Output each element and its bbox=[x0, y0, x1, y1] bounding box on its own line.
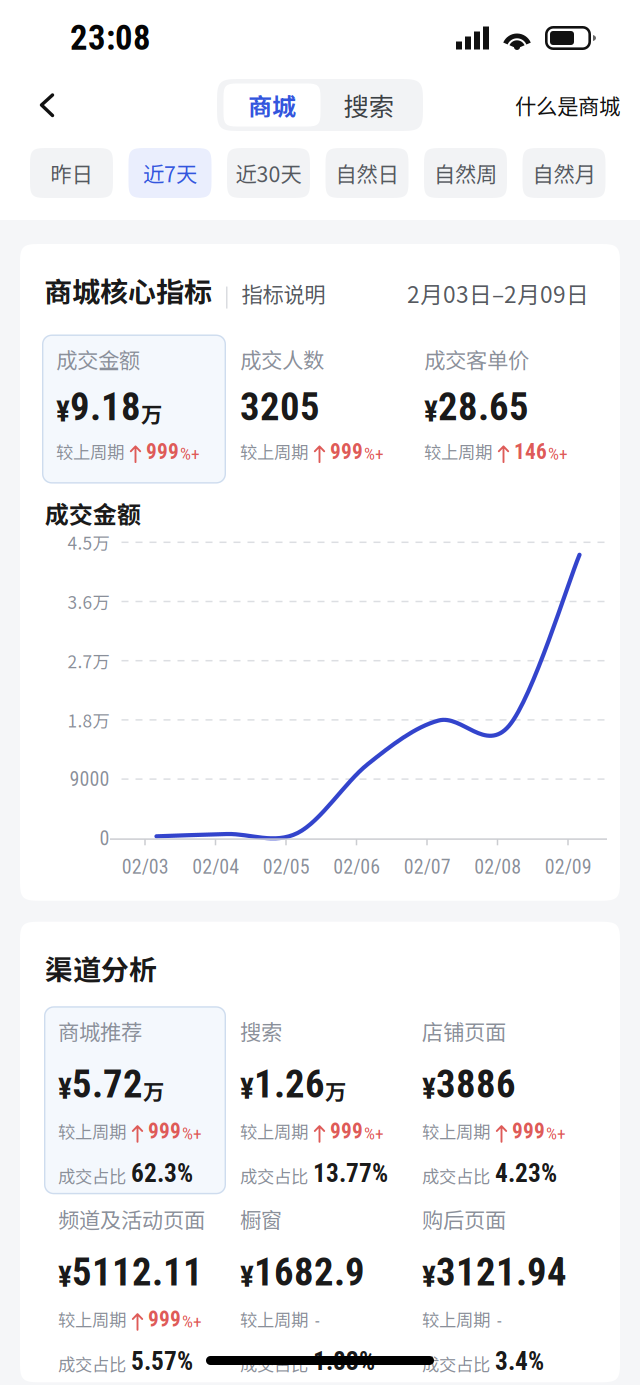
staticText: 频道及活动页面 bbox=[58, 1203, 205, 1234]
button[interactable]: 成交人数 bbox=[226, 334, 410, 483]
staticText: ¥ bbox=[424, 394, 438, 429]
button[interactable]: 指标说明 bbox=[241, 278, 325, 311]
button[interactable]: 自然日 bbox=[325, 148, 408, 198]
staticText: 3.4% bbox=[495, 1346, 544, 1376]
staticText: % bbox=[180, 444, 191, 464]
staticText: 5.57% bbox=[131, 1346, 193, 1376]
staticText: 搜索 bbox=[240, 1015, 282, 1046]
button[interactable]: 自然月 bbox=[522, 148, 605, 198]
staticText: - bbox=[311, 1310, 320, 1332]
staticText: 较上周期 bbox=[58, 1119, 126, 1144]
staticText: 近30天 bbox=[235, 158, 301, 188]
button[interactable]: 频道及活动页面 bbox=[44, 1194, 226, 1382]
staticText: + bbox=[193, 1123, 202, 1144]
staticText: + bbox=[375, 444, 384, 464]
staticText: 较上周期 bbox=[58, 1307, 126, 1332]
staticText: 02/06 bbox=[333, 855, 380, 879]
staticText: 02/07 bbox=[404, 855, 451, 879]
staticText: + bbox=[193, 1311, 202, 1332]
staticText: ¥ bbox=[422, 1259, 436, 1294]
button[interactable]: 店铺页面 bbox=[408, 1006, 590, 1194]
staticText: 23:08 bbox=[70, 18, 151, 58]
staticText: 万 bbox=[141, 398, 162, 429]
staticText: % bbox=[364, 444, 375, 464]
button[interactable]: Back bbox=[27, 77, 67, 133]
staticText: 4.5万 bbox=[67, 530, 109, 555]
staticText: 近7天 bbox=[143, 158, 197, 188]
staticText: 1.26 bbox=[254, 1061, 325, 1107]
staticText: 自然月 bbox=[532, 158, 595, 188]
staticText: 02/09 bbox=[545, 855, 592, 879]
staticText: 成交金额 bbox=[56, 343, 140, 374]
button[interactable]: 商城推荐 bbox=[44, 1006, 226, 1194]
staticText: 1.8万 bbox=[67, 707, 109, 732]
staticText: + bbox=[557, 1123, 566, 1144]
staticText: 3205 bbox=[240, 384, 320, 430]
staticText: 万 bbox=[325, 1075, 346, 1106]
staticText: 999 bbox=[148, 1307, 181, 1332]
staticText: 2月03日–2月09日 bbox=[407, 277, 589, 309]
staticText: 自然日 bbox=[335, 158, 398, 188]
button[interactable]: 自然周 bbox=[424, 148, 507, 198]
staticText: 999 bbox=[146, 439, 179, 464]
staticText: 商城 bbox=[248, 88, 296, 122]
staticText: % bbox=[364, 1123, 375, 1144]
staticText: 较上周期 bbox=[424, 439, 492, 464]
button[interactable]: 成交金额 bbox=[42, 334, 226, 483]
staticText: 万 bbox=[143, 1075, 164, 1106]
staticText: 999 bbox=[512, 1119, 545, 1144]
button[interactable]: 成交客单价 bbox=[410, 334, 594, 483]
staticText: 成交占比 bbox=[240, 1163, 308, 1188]
staticText: 自然周 bbox=[434, 158, 497, 188]
staticText: 999 bbox=[330, 1119, 363, 1144]
staticText: + bbox=[375, 1123, 384, 1144]
staticText: 橱窗 bbox=[240, 1203, 282, 1234]
staticText: 较上周期 bbox=[240, 439, 308, 464]
button[interactable]: 什么是商城 bbox=[515, 77, 620, 133]
staticText: 3886 bbox=[436, 1061, 516, 1107]
staticText: + bbox=[559, 444, 568, 464]
staticText: 渠道分析 bbox=[45, 948, 157, 988]
staticText: 5112.11 bbox=[72, 1249, 203, 1295]
button[interactable]: 搜索 bbox=[226, 1006, 408, 1194]
staticText: 1682.9 bbox=[254, 1249, 365, 1295]
staticText: 1.83% bbox=[313, 1346, 375, 1376]
staticText: % bbox=[182, 1311, 193, 1332]
staticText: 0 bbox=[99, 827, 109, 850]
staticText: 999 bbox=[148, 1119, 181, 1144]
staticText: 146 bbox=[514, 439, 547, 464]
staticText: + bbox=[191, 444, 200, 464]
staticText: 4.23% bbox=[495, 1158, 557, 1188]
staticText: 商城推荐 bbox=[58, 1015, 142, 1046]
button[interactable]: 商城 bbox=[223, 83, 320, 126]
button[interactable]: 购后页面 bbox=[408, 1194, 590, 1382]
button[interactable]: 搜索 bbox=[320, 83, 416, 126]
staticText: ¥ bbox=[240, 1259, 254, 1294]
staticText: 13.77% bbox=[313, 1158, 388, 1188]
staticText: ¥ bbox=[58, 1071, 72, 1106]
button[interactable]: 近7天 bbox=[128, 148, 211, 198]
staticText: ¥ bbox=[56, 394, 70, 429]
staticText: 02/03 bbox=[122, 855, 169, 879]
staticText: 3121.94 bbox=[436, 1249, 567, 1295]
button[interactable]: 橱窗 bbox=[226, 1194, 408, 1382]
staticText: 62.3% bbox=[131, 1158, 193, 1188]
staticText: 成交人数 bbox=[240, 343, 324, 374]
staticText: 购后页面 bbox=[422, 1203, 506, 1234]
staticText: % bbox=[548, 444, 559, 464]
staticText: 较上周期 bbox=[240, 1307, 308, 1332]
staticText: 搜索 bbox=[343, 87, 393, 123]
staticText: 28.65 bbox=[438, 384, 529, 430]
staticText: 02/04 bbox=[192, 855, 239, 879]
staticText: 2.7万 bbox=[67, 648, 109, 673]
staticText: 成交占比 bbox=[58, 1163, 126, 1188]
button[interactable]: 近30天 bbox=[227, 148, 310, 198]
staticText: % bbox=[182, 1123, 193, 1144]
staticText: 较上周期 bbox=[240, 1119, 308, 1144]
button[interactable]: 昨日 bbox=[30, 148, 113, 198]
staticText: 9000 bbox=[69, 767, 109, 791]
staticText: 商城核心指标 bbox=[44, 270, 212, 310]
staticText: 成交占比 bbox=[422, 1163, 490, 1188]
staticText: 5.72 bbox=[72, 1061, 143, 1107]
staticText: 999 bbox=[330, 439, 363, 464]
